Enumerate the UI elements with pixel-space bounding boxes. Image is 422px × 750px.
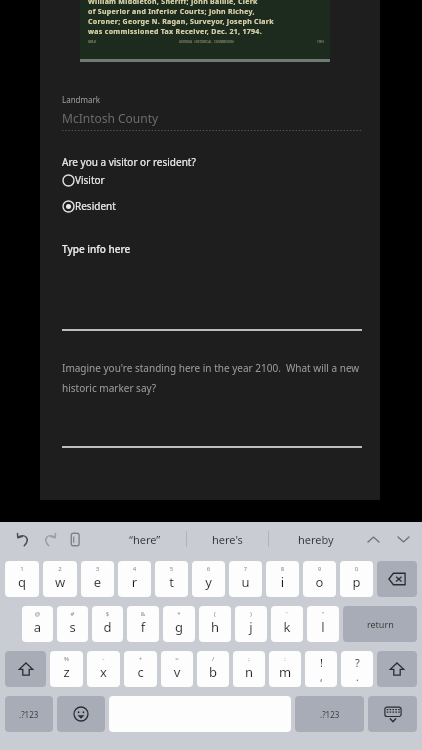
button[interactable]: Redo — [36, 526, 62, 552]
button[interactable]: Paste — [62, 526, 88, 552]
button[interactable]: Hide keyboard — [368, 696, 417, 732]
staticText: ? — [355, 655, 360, 670]
staticText: b — [197, 663, 229, 681]
staticText: 6 — [192, 565, 225, 573]
staticText: hereby — [298, 532, 334, 547]
staticText: McIntosh County — [62, 110, 159, 126]
staticText: # — [57, 610, 88, 618]
button[interactable]: ) — [235, 606, 267, 642]
button[interactable]: 6 — [192, 561, 225, 597]
button[interactable]: 1 — [5, 561, 39, 597]
button[interactable]: # — [57, 606, 88, 642]
staticText: j — [235, 618, 267, 636]
staticText: ) — [235, 610, 267, 618]
button[interactable]: ( — [199, 606, 231, 642]
button[interactable]: = — [161, 651, 193, 687]
button[interactable]: 5 — [155, 561, 188, 597]
staticText: ' — [271, 610, 303, 618]
staticText: Type info here — [62, 242, 131, 256]
button[interactable]: .?123 — [295, 696, 364, 732]
staticText: 3 — [81, 565, 114, 573]
button[interactable]: " — [307, 606, 339, 642]
staticText: e — [81, 573, 114, 591]
staticText: 7 — [229, 565, 262, 573]
button[interactable]: ? — [341, 651, 373, 687]
staticText: @ — [22, 610, 53, 618]
button[interactable]: “here” — [104, 522, 186, 556]
button[interactable]: Previous — [362, 528, 384, 550]
button[interactable]: % — [50, 651, 83, 687]
staticText: f — [127, 618, 159, 636]
staticText: h — [199, 618, 231, 636]
button[interactable]: Shift — [5, 651, 46, 687]
button[interactable]: Resident — [62, 198, 116, 214]
button[interactable]: @ — [22, 606, 53, 642]
staticText: / — [197, 655, 229, 663]
button[interactable]: Undo — [10, 526, 36, 552]
staticText: 4 — [118, 565, 151, 573]
staticText: here's — [212, 532, 243, 547]
button[interactable]: - — [87, 651, 120, 687]
button[interactable]: ; — [233, 651, 265, 687]
button[interactable]: & — [127, 606, 159, 642]
staticText: Imagine you're standing here in the year… — [62, 361, 362, 395]
staticText: a — [22, 618, 53, 636]
staticText: “here” — [129, 532, 161, 547]
button[interactable]: 3 — [81, 561, 114, 597]
staticText: 049-8 — [88, 40, 96, 44]
staticText: g — [163, 618, 195, 636]
button[interactable]: Next — [392, 528, 414, 550]
button[interactable]: return — [343, 606, 417, 642]
staticText: % — [50, 655, 83, 663]
staticText: * — [163, 610, 195, 618]
button[interactable]: $ — [92, 606, 123, 642]
staticText: GEORGIA HISTORICAL COMMISSION — [179, 40, 234, 44]
button[interactable]: hereby — [269, 522, 362, 556]
staticText: d — [92, 618, 123, 636]
button[interactable]: ' — [271, 606, 303, 642]
staticText: s — [57, 618, 88, 636]
staticText: n — [233, 663, 265, 681]
button[interactable]: : — [269, 651, 301, 687]
button[interactable]: Emoji — [57, 696, 105, 732]
button[interactable]: 4 — [118, 561, 151, 597]
staticText: q — [5, 573, 39, 591]
button[interactable]: * — [163, 606, 195, 642]
staticText: x — [87, 663, 120, 681]
staticText: p — [340, 573, 373, 591]
staticText: & — [127, 610, 159, 618]
button[interactable]: 7 — [229, 561, 262, 597]
button[interactable]: 9 — [303, 561, 336, 597]
button[interactable]: / — [197, 651, 229, 687]
button[interactable]: Shift — [377, 651, 417, 687]
staticText: , — [320, 670, 323, 684]
button[interactable]: ! — [305, 651, 337, 687]
button[interactable]: here's — [187, 522, 268, 556]
button[interactable]: .?123 — [5, 696, 53, 732]
button[interactable]: + — [124, 651, 157, 687]
button[interactable]: 8 — [266, 561, 299, 597]
staticText: Coroner; George N. Ragan, Surveyor, Jose… — [88, 17, 274, 27]
staticText: ; — [233, 655, 265, 663]
staticText: Are you a visitor or resident? — [62, 155, 196, 169]
staticText: $ — [92, 610, 123, 618]
staticText: + — [124, 655, 157, 663]
staticText: . — [356, 670, 359, 684]
staticText: m — [269, 663, 301, 681]
staticText: 8 — [266, 565, 299, 573]
button[interactable]: Backspace — [377, 561, 417, 597]
staticText: o — [303, 573, 336, 591]
button[interactable]: Visitor — [62, 172, 105, 188]
button[interactable]: 2 — [43, 561, 77, 597]
staticText: w — [43, 573, 77, 591]
staticText: William Middleton, Sheriff; John Baillie… — [88, 0, 258, 7]
staticText: Resident — [75, 199, 116, 213]
staticText: l — [307, 618, 339, 636]
staticText: k — [271, 618, 303, 636]
button[interactable]: 0 — [340, 561, 373, 597]
staticText: 0 — [340, 565, 373, 573]
staticText: ( — [199, 610, 231, 618]
staticText: .?123 — [320, 709, 340, 720]
staticText: Visitor — [75, 173, 105, 187]
